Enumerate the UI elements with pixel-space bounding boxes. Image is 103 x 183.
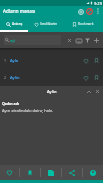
button[interactable]: Remove ads <box>85 7 94 16</box>
button[interactable]: Filter <box>83 36 92 45</box>
staticText: 1 <box>4 58 7 63</box>
button[interactable]: Favourite <box>80 55 91 66</box>
button[interactable]: Favourite <box>80 72 91 83</box>
button[interactable]: Add <box>92 36 101 45</box>
button[interactable]: Bookmark <box>20 165 40 180</box>
button[interactable]: Expand <box>84 87 93 96</box>
button[interactable]: Favourite <box>0 165 19 180</box>
staticText: Ayın ətrafındakı dairə; hale. <box>2 108 54 113</box>
button[interactable]: Sevdiklərim <box>28 16 63 32</box>
staticText: 9:29 <box>94 1 102 6</box>
staticText: Aylin <box>47 89 57 94</box>
button[interactable]: Translate <box>83 165 103 180</box>
button[interactable]: Close <box>93 87 102 96</box>
staticText: 2 <box>4 75 7 80</box>
button[interactable]: More options <box>94 7 102 15</box>
staticText: Qadın adı <box>2 101 20 106</box>
staticText: Adların mənası <box>3 8 36 14</box>
staticText: Sevdiklərim <box>40 22 58 26</box>
button[interactable]: Settings <box>76 7 85 16</box>
button[interactable]: Bookmark <box>63 16 103 32</box>
staticText: Bookmark <box>78 22 94 26</box>
button[interactable]: Bookmark <box>91 72 102 83</box>
button[interactable]: Copy <box>41 165 61 180</box>
staticText: ayl <box>10 38 16 43</box>
staticText: Axtarış <box>12 22 23 26</box>
button[interactable]: Share <box>62 165 82 180</box>
button[interactable]: Keyboard <box>74 36 83 45</box>
button[interactable]: Clear <box>65 36 74 45</box>
staticText: Ayla <box>10 58 19 63</box>
button[interactable]: Bookmark <box>91 55 102 66</box>
button[interactable]: 2 <box>0 69 103 86</box>
button[interactable]: ayl <box>4 35 61 45</box>
button[interactable]: 1 <box>0 52 103 69</box>
staticText: Aylin <box>10 75 20 80</box>
button[interactable]: Axtarış <box>0 16 28 32</box>
